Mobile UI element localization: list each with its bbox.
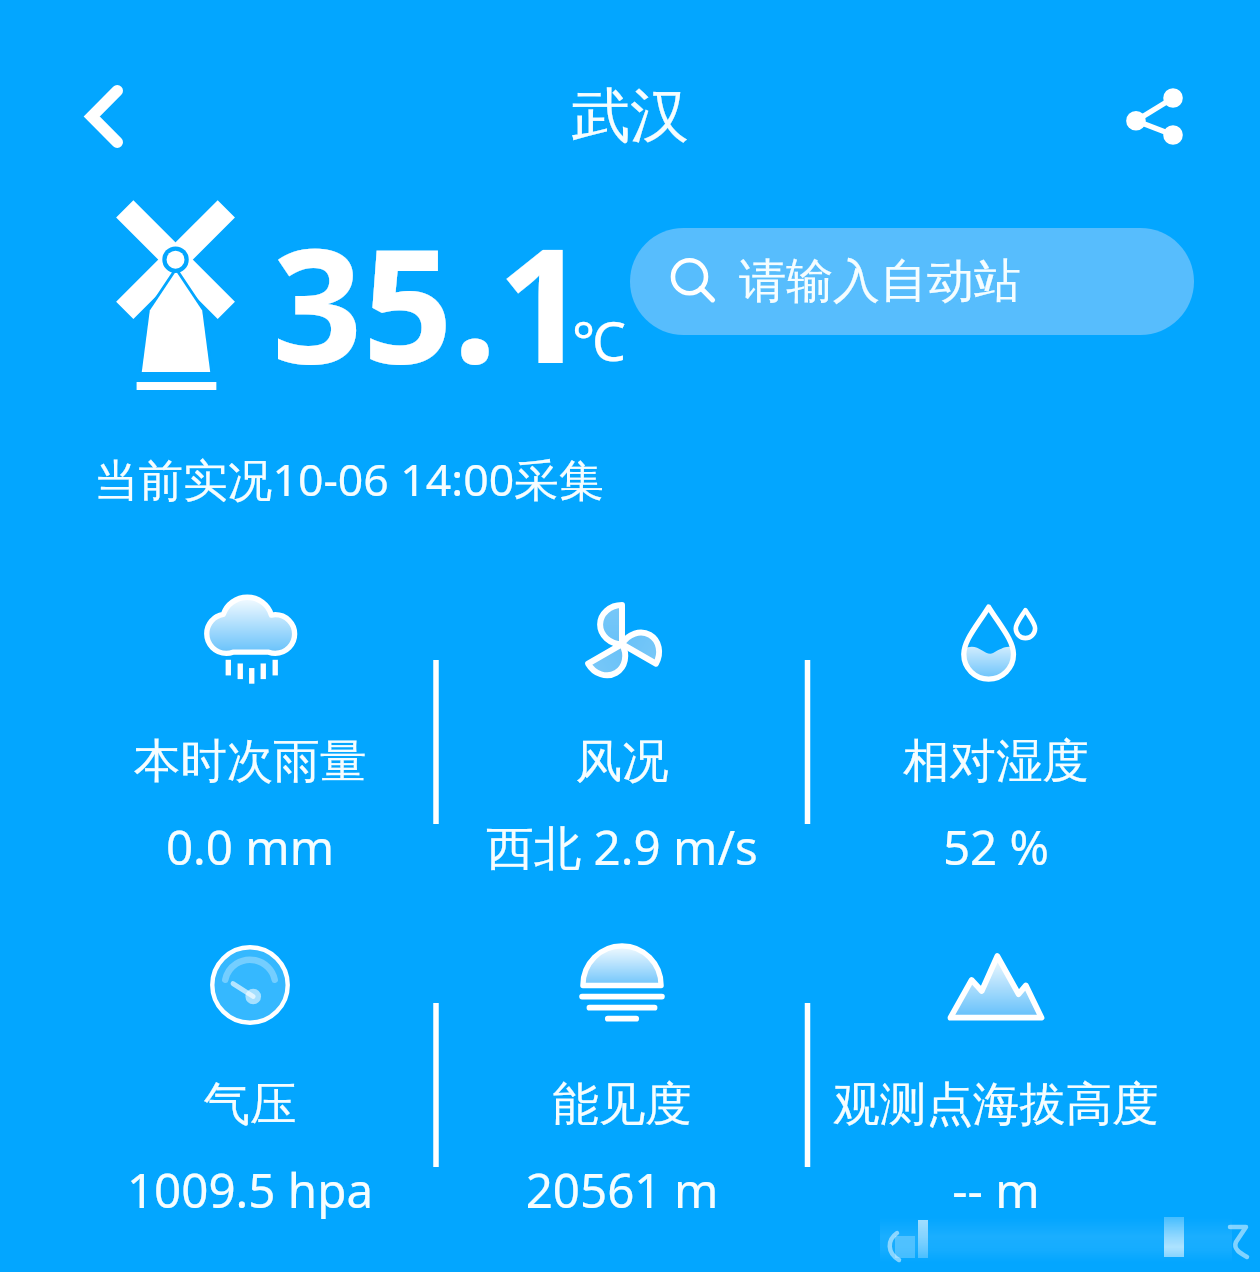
button[interactable]: 相对湿度 [826, 580, 1166, 880]
staticText: 西北 2.9 m/s [22, 814, 1222, 879]
staticText: 当前实况10-06 14:00采集 [94, 448, 604, 509]
staticText: 观测点海拔高度 [396, 1075, 1260, 1134]
staticText: 35.1 [272, 194, 588, 409]
staticText: 能见度 [22, 1075, 1222, 1134]
button[interactable]: 能见度 [452, 925, 792, 1225]
button[interactable]: 观测点海拔高度 [826, 925, 1166, 1225]
staticText: 相对湿度 [396, 732, 1260, 791]
button[interactable]: 请输入自动站 [630, 228, 1194, 335]
staticText: -- m [396, 1157, 1260, 1222]
staticText: 武汉 [30, 79, 1230, 153]
button[interactable]: 本时次雨量 [80, 580, 420, 880]
staticText: 0.0 mm [0, 814, 850, 879]
staticText: 请输入自动站 [739, 252, 1021, 311]
staticText: 52 % [396, 814, 1260, 879]
staticText: 本时次雨量 [0, 732, 850, 791]
button[interactable]: Back [54, 66, 154, 166]
staticText: 气压 [0, 1075, 850, 1134]
staticText: 风况 [22, 732, 1222, 791]
staticText: 1009.5 hpa [0, 1157, 850, 1222]
button[interactable]: Share [1104, 66, 1204, 166]
staticText: 20561 m [22, 1157, 1222, 1222]
button[interactable]: 风况 [452, 580, 792, 880]
staticText: ℃ [572, 303, 626, 377]
button[interactable]: 气压 [80, 925, 420, 1225]
